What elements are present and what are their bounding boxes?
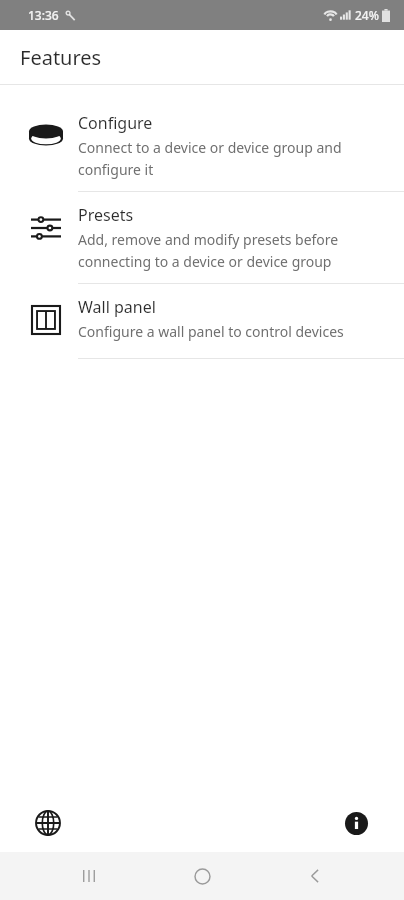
- button[interactable]: Configure: [0, 100, 404, 191]
- button[interactable]: Home: [178, 852, 226, 900]
- staticText: Connect to a device or device group and …: [78, 138, 388, 179]
- staticText: Add, remove and modify presets before co…: [78, 230, 388, 271]
- button[interactable]: Back: [291, 852, 339, 900]
- staticText: Configure: [78, 112, 153, 134]
- staticText: 24%: [355, 7, 379, 23]
- button[interactable]: Recent apps: [65, 852, 113, 900]
- staticText: 13:36: [28, 7, 59, 23]
- button[interactable]: Language: [28, 803, 68, 843]
- staticText: Presets: [78, 204, 134, 226]
- staticText: Features: [20, 44, 102, 71]
- button[interactable]: Wall panel: [0, 284, 404, 358]
- staticText: Wall panel: [78, 296, 156, 318]
- button[interactable]: About: [336, 803, 376, 843]
- button[interactable]: Presets: [0, 192, 404, 283]
- staticText: Configure a wall panel to control device…: [78, 322, 344, 341]
